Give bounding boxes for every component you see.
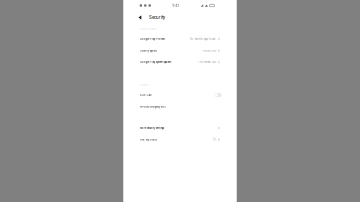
staticText: Security status <box>140 27 156 30</box>
staticText: More security settings <box>140 126 164 129</box>
button[interactable]: Wireless emergency alert <box>123 101 237 112</box>
button[interactable]: Google Play system update <box>123 56 237 68</box>
staticText: Security update <box>140 49 157 52</box>
staticText: SOS Call <box>140 93 152 96</box>
staticText: On <box>213 138 216 141</box>
staticText: Wireless emergency alert <box>140 105 166 108</box>
button[interactable]: Google Play Protect <box>123 33 237 45</box>
staticText: 9:41 <box>172 3 179 8</box>
button[interactable]: Find My Device <box>123 134 237 145</box>
staticText: No harmful apps found <box>190 37 216 40</box>
staticText: Security <box>140 83 149 86</box>
button[interactable]: SOS Call <box>123 89 237 101</box>
staticText: February 2024 <box>203 49 216 52</box>
button[interactable]: Back <box>136 12 146 23</box>
staticText: Security <box>149 15 165 20</box>
staticText: Google Play Protect <box>140 37 165 40</box>
staticText: Find My Device <box>140 138 157 141</box>
button[interactable]: More security settings <box>123 122 237 134</box>
staticText: 1 November 2023 <box>198 61 216 64</box>
staticText: Google Play system update <box>140 61 171 64</box>
button[interactable]: Security update <box>123 45 237 56</box>
